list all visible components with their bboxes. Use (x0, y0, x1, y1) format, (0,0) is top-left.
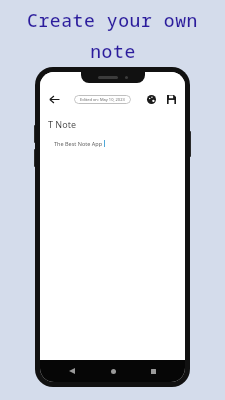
button[interactable]: Back (64, 363, 80, 379)
button[interactable]: Theme (143, 91, 159, 107)
staticText: Create your own (27, 8, 198, 33)
staticText: The Best Note App (54, 140, 103, 147)
button[interactable]: Back (46, 91, 62, 107)
button[interactable]: Save (163, 91, 179, 107)
staticText: Edited on: May 10, 2023 (80, 97, 125, 102)
button[interactable]: Edited on: May 10, 2023 (74, 95, 131, 104)
button[interactable]: Home (105, 363, 121, 379)
staticText: T Note (48, 118, 76, 130)
staticText: note (90, 39, 136, 64)
button[interactable]: Recent apps (145, 363, 161, 379)
